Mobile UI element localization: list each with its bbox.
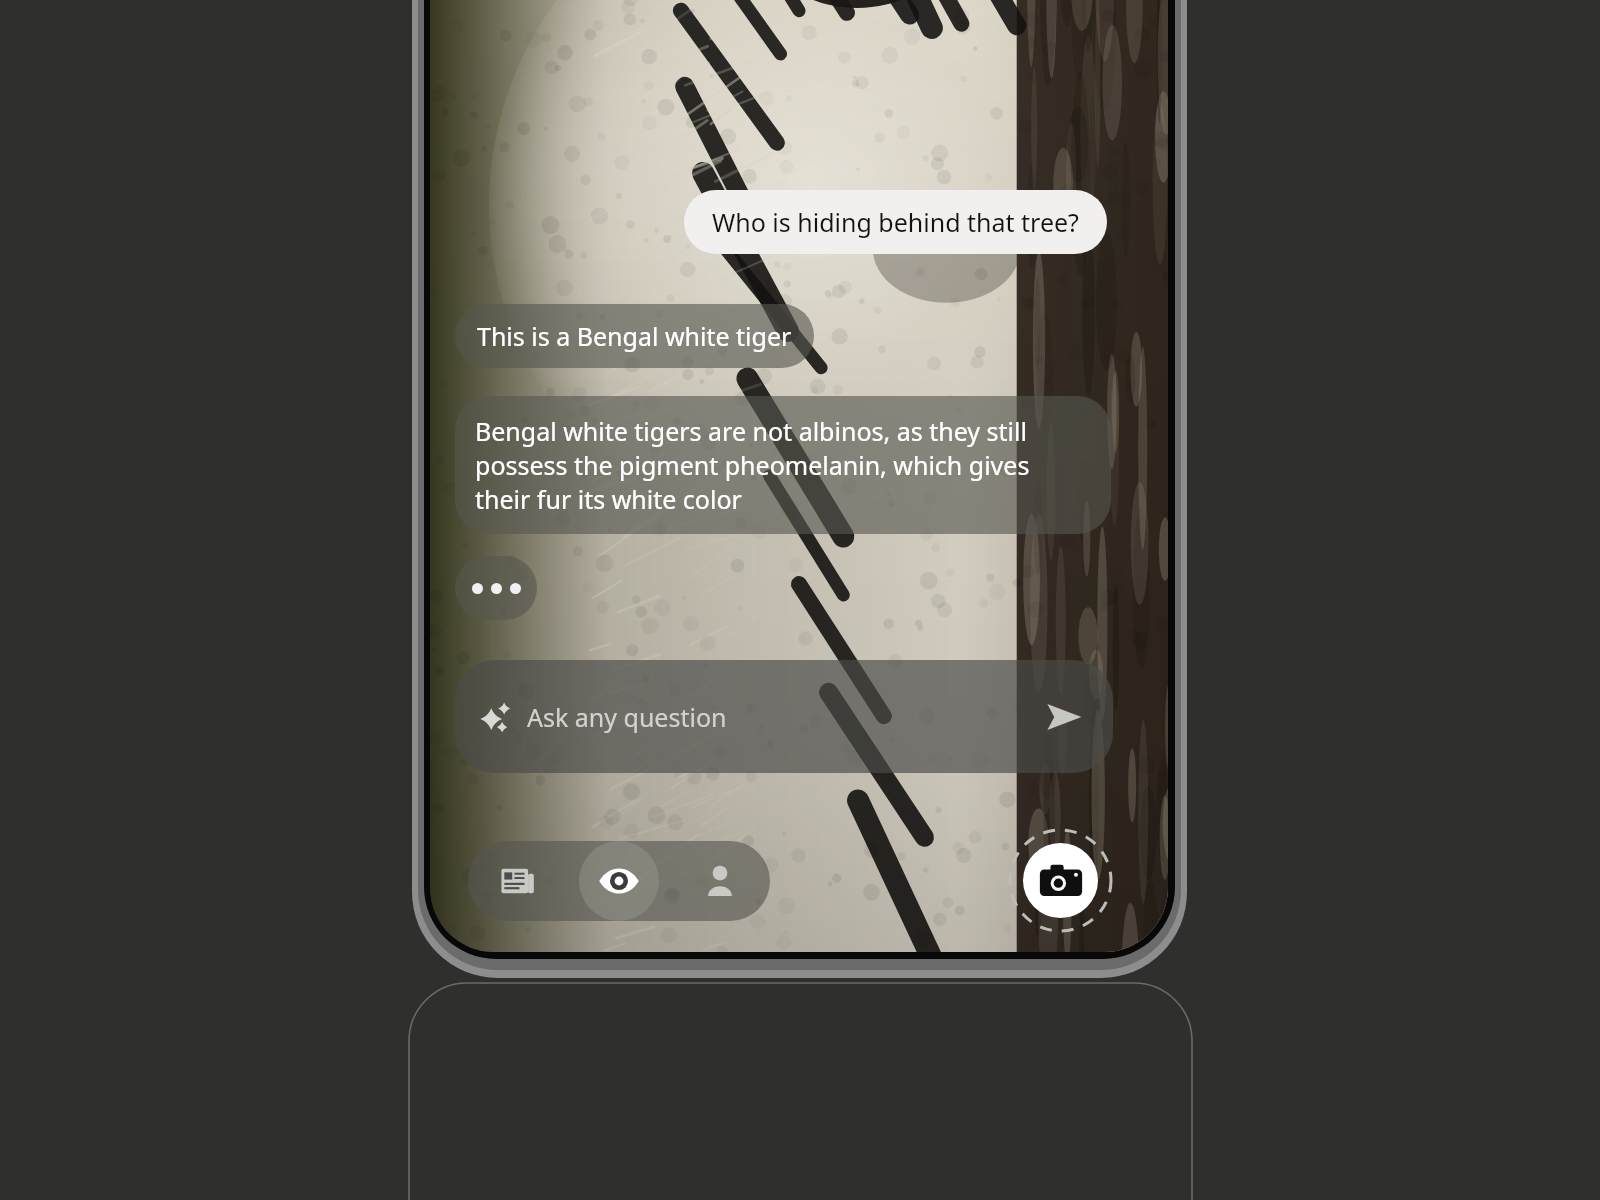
button[interactable]: Camera [1008,828,1113,933]
button[interactable]: Ask any question [455,660,1113,773]
button[interactable]: Profile [669,841,770,921]
staticText: Bengal white tigers are not albinos, as … [475,414,1091,516]
staticText: Ask any question [527,700,727,734]
button[interactable]: This is a Bengal white tiger [455,304,814,368]
staticText: Who is hiding behind that tree? [712,205,1079,239]
button[interactable]: Bengal white tigers are not albinos, as … [455,396,1111,534]
button[interactable]: Who is hiding behind that tree? [684,190,1107,254]
button[interactable]: News [468,841,568,921]
button[interactable]: Assistant is typing [455,556,537,620]
button[interactable]: Send [1037,691,1089,743]
staticText: This is a Bengal white tiger [477,319,792,353]
button[interactable]: Lens [579,841,659,921]
